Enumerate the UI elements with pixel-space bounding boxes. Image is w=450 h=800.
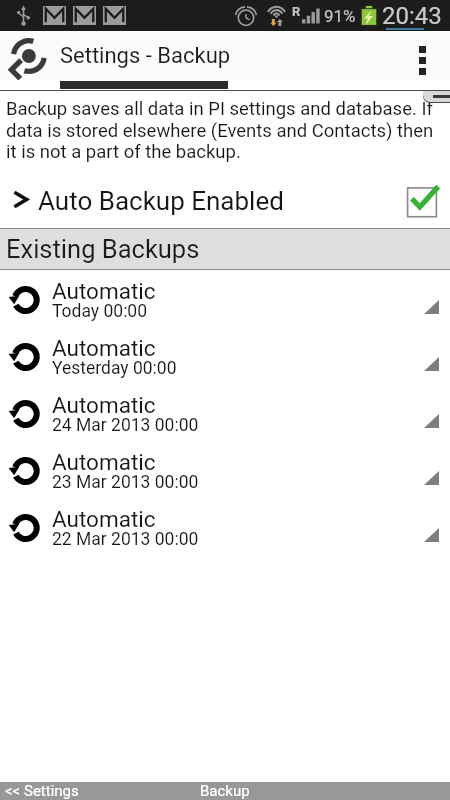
staticText: Existing Backups <box>6 234 200 264</box>
button[interactable]: Automatic <box>0 270 450 327</box>
button[interactable]: Automatic <box>0 384 450 441</box>
button[interactable]: Automatic <box>0 327 450 384</box>
staticText: Backup saves all data in PI settings and… <box>6 98 444 162</box>
button[interactable]: Automatic <box>0 441 450 498</box>
staticText: 22 Mar 2013 00:00 <box>52 529 199 550</box>
staticText: Auto Backup Enabled <box>38 186 284 216</box>
staticText: Automatic <box>52 506 156 532</box>
staticText: Settings - Backup <box>60 43 231 69</box>
staticText: Automatic <box>52 449 156 475</box>
staticText: 24 Mar 2013 00:00 <box>52 415 199 436</box>
button[interactable]: More options <box>402 31 450 80</box>
staticText: Yesterday 00:00 <box>52 358 177 379</box>
staticText: Automatic <box>52 335 156 361</box>
button[interactable]: Navigate up <box>0 31 52 80</box>
staticText: << Settings <box>5 782 79 800</box>
staticText: 20:43 <box>382 2 442 30</box>
staticText: Backup <box>200 782 250 800</box>
button[interactable]: << Settings <box>0 782 450 800</box>
staticText: Automatic <box>52 392 156 418</box>
staticText: 23 Mar 2013 00:00 <box>52 472 199 493</box>
staticText: Today 00:00 <box>52 301 148 322</box>
staticText: Automatic <box>52 278 156 304</box>
staticText: R <box>292 4 301 19</box>
button[interactable]: Automatic <box>0 498 450 555</box>
staticText: 91% <box>324 6 356 26</box>
button[interactable]: Auto Backup Enabled <box>0 173 450 228</box>
